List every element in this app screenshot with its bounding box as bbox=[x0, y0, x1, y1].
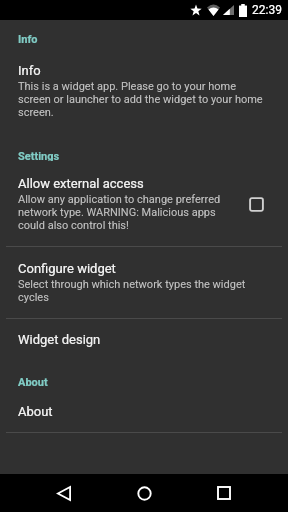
staticText: About bbox=[18, 376, 48, 387]
staticText: Info bbox=[18, 63, 41, 78]
staticText: 22:39 bbox=[252, 3, 282, 17]
staticText: This is a widget app. Please go to your … bbox=[18, 80, 270, 119]
staticText: Info bbox=[18, 33, 38, 44]
button[interactable]: Recent apps bbox=[205, 474, 243, 512]
button[interactable]: Info bbox=[0, 48, 288, 133]
staticText: Widget design bbox=[18, 332, 101, 347]
button[interactable]: Allow external access bbox=[0, 161, 288, 246]
button[interactable]: Back bbox=[45, 474, 83, 512]
staticText: Select through which network types the w… bbox=[18, 278, 270, 304]
staticText: Allow any application to change preferre… bbox=[18, 193, 240, 232]
button[interactable]: Widget design bbox=[0, 319, 288, 360]
staticText: Allow external access bbox=[18, 176, 144, 191]
button[interactable]: About bbox=[0, 390, 288, 432]
staticText: Configure widget bbox=[18, 261, 116, 276]
staticText: About bbox=[18, 404, 53, 419]
button[interactable]: Configure widget bbox=[0, 247, 288, 318]
button[interactable]: Home bbox=[125, 474, 163, 512]
staticText: Settings bbox=[18, 150, 60, 161]
